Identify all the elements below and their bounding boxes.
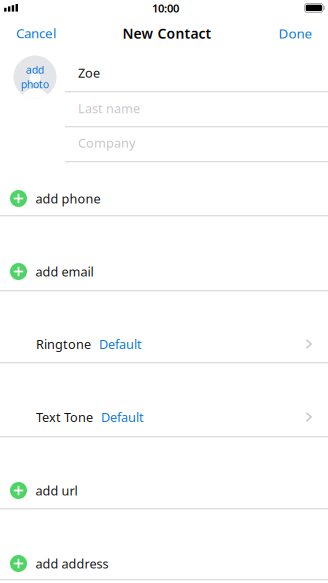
staticText: Cancel	[16, 24, 56, 42]
button[interactable]: Zoe	[65, 56, 328, 89]
staticText: Done	[278, 24, 312, 42]
button[interactable]: add address	[0, 541, 328, 583]
staticText: photo	[21, 77, 49, 91]
button[interactable]: Cancel	[0, 19, 76, 47]
staticText: Default	[99, 335, 142, 353]
button[interactable]: Text Tone	[0, 395, 328, 439]
staticText: Text Tone	[36, 408, 93, 426]
button[interactable]: add phone	[0, 176, 328, 220]
button[interactable]: Company	[65, 126, 328, 159]
staticText: add email	[35, 263, 93, 280]
staticText: Last name	[78, 100, 140, 117]
button[interactable]: add url	[0, 468, 328, 512]
staticText: Company	[78, 134, 135, 151]
button[interactable]: add email	[0, 249, 328, 293]
staticText: New Contact	[122, 24, 211, 43]
staticText: add url	[35, 482, 77, 499]
button[interactable]: Ringtone	[0, 322, 328, 366]
button[interactable]: Done	[260, 19, 327, 47]
staticText: add phone	[35, 190, 100, 207]
staticText: Zoe	[78, 64, 100, 81]
staticText: add address	[35, 555, 108, 572]
button[interactable]: Add photo	[13, 55, 56, 98]
staticText: 10:00	[152, 1, 179, 16]
staticText: Ringtone	[36, 335, 91, 353]
staticText: add	[26, 63, 44, 77]
button[interactable]: Last name	[65, 92, 328, 125]
staticText: Default	[101, 408, 144, 426]
